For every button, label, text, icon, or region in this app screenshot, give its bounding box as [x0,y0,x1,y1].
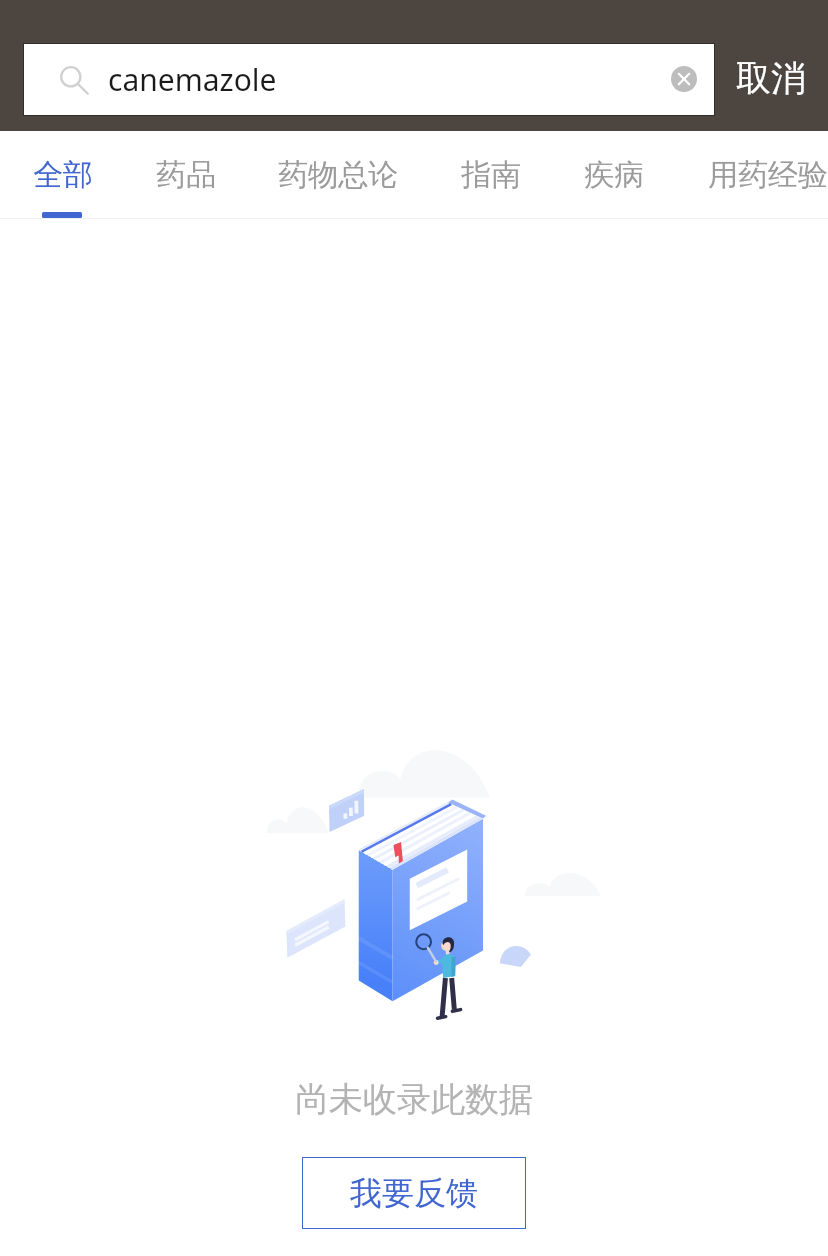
staticText: 我要反馈 [350,1173,478,1213]
staticText: 指南 [461,156,521,194]
staticText: 药物总论 [278,156,398,194]
staticText: 疾病 [584,156,644,194]
button[interactable]: 药物总论 [270,131,406,219]
button[interactable]: 全部 [25,131,101,219]
button[interactable]: 取消 [730,50,812,106]
button[interactable]: 疾病 [576,131,652,219]
button[interactable]: 用药经验 [700,131,828,219]
button[interactable]: 我要反馈 [302,1157,526,1229]
staticText: 取消 [736,56,806,100]
button[interactable]: canemazole [24,44,714,115]
button[interactable]: 药品 [148,131,224,219]
staticText: 用药经验 [708,156,828,194]
staticText: 尚未收录此数据 [295,1078,533,1121]
button[interactable]: Clear text [661,56,707,102]
staticText: 全部 [33,156,93,194]
staticText: 药品 [156,156,216,194]
button[interactable]: 指南 [453,131,529,219]
staticText: canemazole [108,59,277,100]
